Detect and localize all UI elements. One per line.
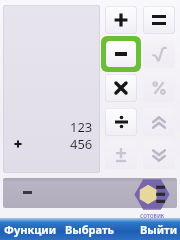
- button[interactable]: Square root: [143, 40, 175, 68]
- staticText: Выйти: [140, 222, 178, 237]
- staticText: СОТОВИК: [140, 213, 165, 220]
- button[interactable]: Функции: [0, 218, 60, 240]
- button[interactable]: Multiply: [105, 74, 137, 102]
- button[interactable]: Plus: [105, 6, 137, 34]
- button[interactable]: Выбрать: [60, 218, 120, 240]
- staticText: Функции: [4, 222, 57, 237]
- button[interactable]: [3, 178, 177, 208]
- button[interactable]: Scroll up: [143, 108, 175, 136]
- button[interactable]: Plus minus: [105, 141, 137, 169]
- staticText: Выбрать: [65, 222, 115, 237]
- button[interactable]: Percent: [143, 74, 175, 102]
- button[interactable]: Выйти: [120, 218, 180, 240]
- button[interactable]: 123: [3, 5, 100, 173]
- staticText: 123: [70, 118, 93, 136]
- button[interactable]: Divide: [105, 108, 137, 136]
- button[interactable]: Scroll down: [143, 141, 175, 169]
- button[interactable]: Minus: [101, 36, 141, 72]
- button[interactable]: Equals: [143, 6, 175, 34]
- staticText: 456: [70, 135, 93, 153]
